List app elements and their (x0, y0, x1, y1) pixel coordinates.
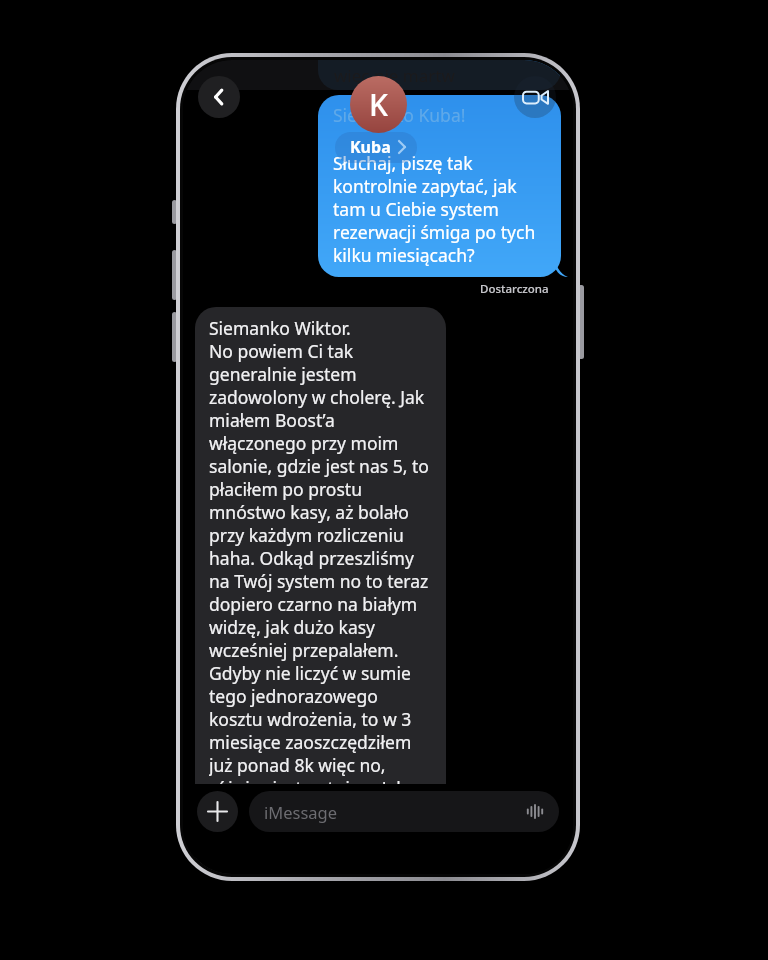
button[interactable]: Back (198, 76, 240, 118)
staticText: Dostarczona (480, 281, 549, 297)
staticText: K (369, 84, 388, 125)
staticText: Siemanko Wiktor. No powiem Ci tak genera… (209, 316, 434, 864)
button[interactable]: Kuba (335, 132, 417, 163)
staticText: więc nie martw (334, 64, 455, 87)
button[interactable]: Siemanko Wiktor. No powiem Ci tak genera… (195, 307, 446, 874)
staticText: Słuchaj, piszę tak kontrolnie zapytać, j… (333, 151, 546, 267)
button[interactable]: Contact Kuba (350, 76, 407, 133)
staticText: iMessage (264, 801, 338, 823)
button[interactable]: więc nie martw (318, 60, 561, 90)
button[interactable]: iMessage (249, 791, 559, 832)
staticText: Kuba (350, 136, 391, 158)
button[interactable]: Siemanko Kuba! (318, 95, 561, 277)
button[interactable]: FaceTime video call (514, 76, 556, 118)
button[interactable]: Add attachment (197, 791, 238, 832)
staticText: Siemanko Kuba! (333, 103, 466, 127)
